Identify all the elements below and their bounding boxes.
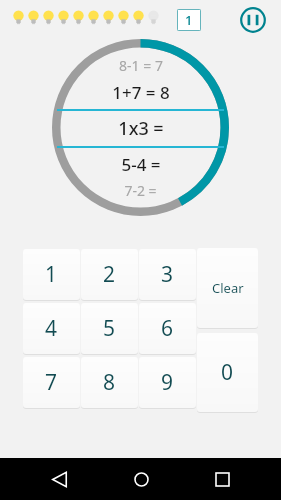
button[interactable]: 8 [81,357,138,408]
button[interactable]: 2 [81,249,138,300]
button[interactable]: 5 [81,303,138,354]
staticText: 5-4 = [121,153,161,176]
staticText: 9 [161,368,174,397]
staticText: 4 [45,314,58,343]
staticText: 7 [45,368,58,397]
staticText: 8-1 = 7 [119,56,163,75]
staticText: 1 [45,260,58,289]
button[interactable]: 9 [139,357,196,408]
staticText: 7-2 = [124,181,157,200]
staticText: 1x3 = [118,116,164,141]
staticText: 1 [185,11,193,29]
button[interactable]: Clear [197,248,258,328]
button[interactable]: 7 [23,357,80,408]
button[interactable]: Home [119,458,163,500]
button[interactable]: 1 [23,249,80,300]
button[interactable]: Back [37,458,81,500]
staticText: 1+7 = 8 [112,81,170,104]
staticText: Clear [212,279,244,297]
staticText: 6 [161,314,174,343]
button[interactable]: 4 [23,303,80,354]
button[interactable]: 6 [139,303,196,354]
staticText: 5 [103,314,116,343]
staticText: 0 [221,358,234,387]
button[interactable]: Pause [240,7,266,33]
button[interactable]: Recents [200,458,244,500]
button[interactable]: 3 [139,249,196,300]
button[interactable]: 0 [197,333,258,412]
staticText: 8 [103,368,116,397]
staticText: 3 [161,260,174,289]
staticText: 2 [103,260,116,289]
button[interactable]: 1 [177,9,201,31]
